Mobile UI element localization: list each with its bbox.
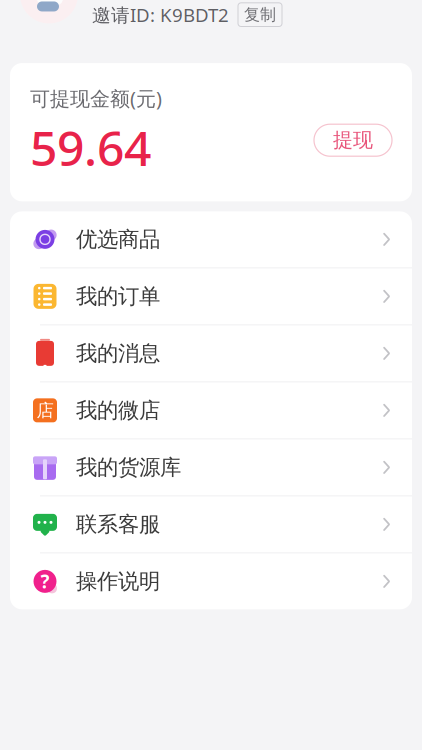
button[interactable]: 我的货源库: [10, 439, 412, 495]
staticText: 我的货源库: [76, 454, 181, 480]
staticText: 优选商品: [76, 226, 160, 252]
button[interactable]: ?: [10, 553, 412, 609]
staticText: 店: [36, 400, 53, 421]
staticText: 邀请ID: K9BDT2: [92, 2, 229, 27]
staticText: 59.64: [30, 116, 151, 179]
button[interactable]: 我的订单: [10, 268, 412, 324]
button[interactable]: 店: [10, 382, 412, 438]
staticText: 操作说明: [76, 568, 160, 594]
button[interactable]: 联系客服: [10, 496, 412, 552]
staticText: 我的微店: [76, 397, 160, 423]
button[interactable]: 优选商品: [10, 211, 412, 267]
button[interactable]: 提现: [314, 124, 392, 156]
staticText: 联系客服: [76, 511, 160, 537]
staticText: 我的消息: [76, 340, 160, 366]
staticText: 提现: [333, 128, 373, 152]
staticText: 我的订单: [76, 283, 160, 309]
staticText: 可提现金额(元): [30, 85, 162, 112]
button[interactable]: 我的消息: [10, 325, 412, 381]
staticText: ?: [40, 569, 49, 594]
staticText: 复制: [244, 5, 276, 24]
button[interactable]: 复制: [238, 3, 282, 26]
